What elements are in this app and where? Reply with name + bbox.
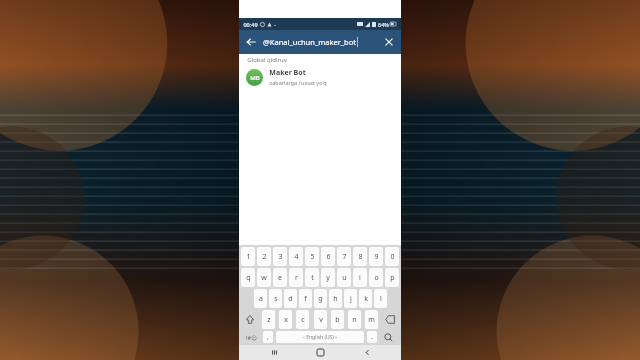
staticText: e (278, 273, 282, 283)
staticText: · (274, 21, 276, 28)
staticText: g (318, 294, 323, 304)
button[interactable]: Clear (377, 30, 401, 54)
staticText: 64% (378, 21, 389, 28)
button[interactable]: n (348, 310, 361, 329)
button[interactable]: 5 (305, 247, 319, 266)
staticText: @Kanal_uchun_maker_bot (263, 37, 356, 47)
staticText: 0 (390, 252, 395, 262)
button[interactable]: y (321, 268, 335, 287)
button[interactable]: o (369, 268, 383, 287)
staticText: p (390, 273, 395, 283)
button[interactable]: 3 (273, 247, 287, 266)
button[interactable]: ‹ English (US) › (276, 331, 364, 343)
button[interactable]: l (374, 289, 387, 308)
button[interactable]: e (273, 268, 287, 287)
staticText: w (261, 273, 267, 283)
button[interactable]: 7 (337, 247, 351, 266)
staticText: ‹ English (US) › (303, 334, 337, 341)
button[interactable]: 9 (369, 247, 383, 266)
button[interactable]: . (367, 331, 377, 343)
staticText: j (350, 294, 352, 304)
button[interactable]: Back (239, 30, 263, 54)
staticText: Maker Bot (269, 68, 306, 78)
staticText: v (319, 315, 323, 325)
button[interactable]: j (344, 289, 357, 308)
staticText: 7 (342, 252, 347, 262)
staticText: , (267, 332, 269, 342)
staticText: z (267, 315, 271, 325)
staticText: c (301, 315, 305, 325)
button[interactable]: 1 (241, 247, 255, 266)
button[interactable]: x (279, 310, 292, 329)
staticText: y (326, 273, 330, 283)
button[interactable]: Backspace (383, 310, 397, 329)
staticText: q (246, 273, 251, 283)
staticText: r (295, 273, 298, 283)
button[interactable]: MB (239, 65, 401, 89)
button[interactable]: c (296, 310, 309, 329)
staticText: !#☺ (246, 334, 257, 341)
button[interactable]: a (254, 289, 267, 308)
staticText: n (352, 315, 357, 325)
button[interactable]: Shift (243, 310, 257, 329)
staticText: m (368, 315, 375, 325)
button[interactable]: 6 (321, 247, 335, 266)
staticText: k (364, 294, 368, 304)
staticText: f (304, 294, 307, 304)
button[interactable]: 4 (289, 247, 303, 266)
button[interactable]: w (257, 268, 271, 287)
button[interactable]: u (337, 268, 351, 287)
button[interactable]: i (353, 268, 367, 287)
staticText: 3 (278, 252, 283, 262)
button[interactable]: g (314, 289, 327, 308)
button[interactable]: !#☺ (243, 331, 260, 343)
button[interactable]: b (331, 310, 344, 329)
staticText: Global qidiruv (247, 56, 287, 64)
staticText: 1 (246, 252, 251, 262)
staticText: MB (250, 74, 260, 82)
button[interactable]: t (305, 268, 319, 287)
button[interactable]: z (262, 310, 275, 329)
button[interactable]: k (359, 289, 372, 308)
staticText: 5 (310, 252, 315, 262)
button[interactable]: m (365, 310, 378, 329)
button[interactable]: d (284, 289, 297, 308)
staticText: a (259, 294, 263, 304)
staticText: 2 (262, 252, 267, 262)
button[interactable]: q (241, 268, 255, 287)
button[interactable]: Back (355, 345, 379, 360)
staticText: xabarlarga ruxsat yo'q (269, 79, 327, 86)
button[interactable]: p (385, 268, 399, 287)
button[interactable]: r (289, 268, 303, 287)
staticText: x (284, 315, 288, 325)
staticText: h (333, 294, 338, 304)
button[interactable]: , (263, 331, 273, 343)
staticText: o (374, 273, 379, 283)
staticText: d (288, 294, 293, 304)
staticText: 4 (294, 252, 299, 262)
staticText: . (371, 332, 373, 342)
staticText: t (311, 273, 314, 283)
button[interactable]: Recents (262, 345, 286, 360)
button[interactable]: 8 (353, 247, 367, 266)
staticText: b (335, 315, 340, 325)
staticText: s (274, 294, 278, 304)
staticText: 00:49 (243, 21, 258, 28)
button[interactable]: s (269, 289, 282, 308)
staticText: 8 (358, 252, 363, 262)
button[interactable]: h (329, 289, 342, 308)
staticText: u (342, 273, 347, 283)
staticText: 9 (374, 252, 379, 262)
button[interactable]: 2 (257, 247, 271, 266)
button[interactable]: f (299, 289, 312, 308)
button[interactable]: v (314, 310, 327, 329)
staticText: l (380, 294, 382, 304)
staticText: i (359, 273, 361, 283)
button[interactable]: 0 (385, 247, 399, 266)
staticText: 6 (326, 252, 331, 262)
button[interactable]: Search (380, 331, 397, 343)
button[interactable]: Home (308, 345, 332, 360)
